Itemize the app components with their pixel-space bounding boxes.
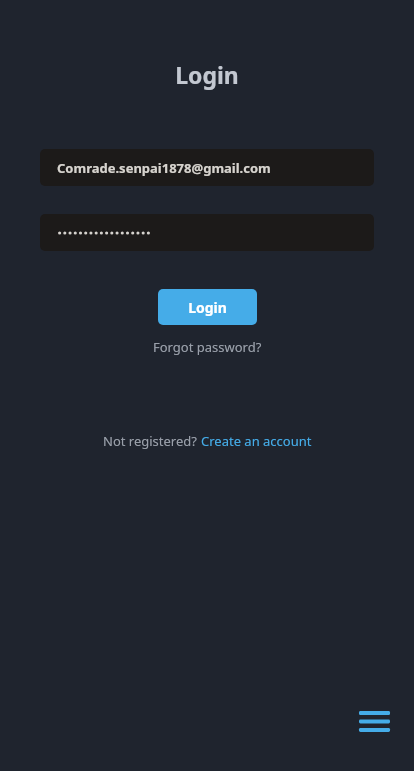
- staticText: Comrade.senpai1878@gmail.com: [57, 159, 271, 177]
- button[interactable]: Comrade.senpai1878@gmail.com: [40, 149, 374, 186]
- button[interactable]: Forgot password?: [147, 335, 268, 359]
- staticText: Login: [175, 59, 239, 90]
- button[interactable]: Login: [158, 289, 257, 325]
- staticText: Forgot password?: [153, 338, 262, 356]
- staticText: Not registered?: [103, 432, 197, 450]
- button[interactable]: [40, 214, 374, 251]
- button[interactable]: Create an account: [201, 432, 312, 450]
- staticText: Login: [188, 298, 227, 317]
- staticText: Create an account: [201, 432, 312, 450]
- button[interactable]: Menu: [356, 703, 392, 739]
